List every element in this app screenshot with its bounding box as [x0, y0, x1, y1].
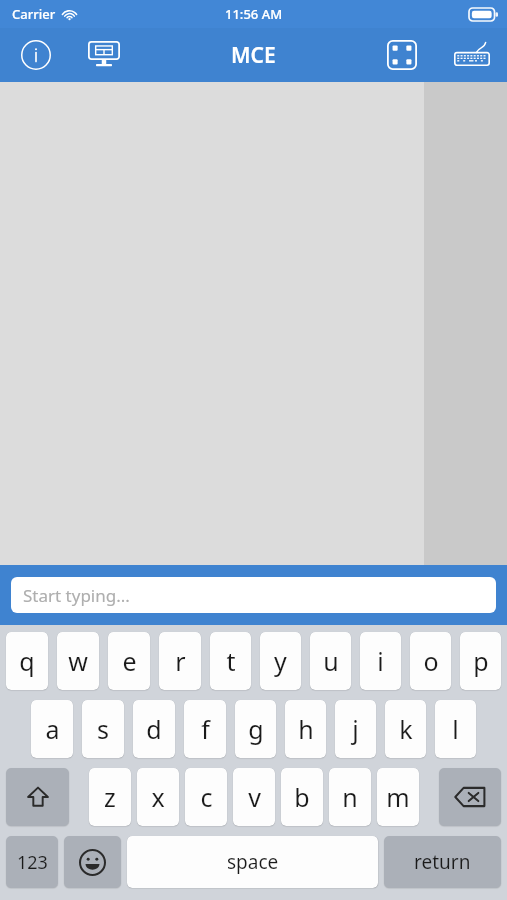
button[interactable]: x [137, 768, 179, 826]
button[interactable]: l [435, 700, 476, 758]
button[interactable]: 123 [6, 836, 58, 888]
button[interactable]: Keyboard [451, 34, 493, 76]
staticText: MCE [231, 41, 276, 70]
button[interactable]: Shift [6, 768, 69, 826]
staticText: a [45, 712, 60, 746]
staticText: k [399, 712, 413, 746]
staticText: x [151, 780, 165, 814]
button[interactable]: e [108, 632, 150, 690]
staticText: i [377, 644, 384, 678]
button[interactable]: f [184, 700, 226, 758]
button[interactable]: Emoji [64, 836, 121, 888]
button[interactable]: g [235, 700, 276, 758]
button[interactable]: h [285, 700, 326, 758]
button[interactable]: y [260, 632, 301, 690]
staticText: 11:56 AM [225, 5, 283, 23]
staticText: p [473, 644, 489, 678]
staticText: 123 [17, 850, 48, 875]
staticText: s [97, 712, 109, 746]
staticText: g [248, 712, 264, 746]
button[interactable]: z [89, 768, 131, 826]
button[interactable]: space [127, 836, 378, 888]
button[interactable]: v [233, 768, 275, 826]
staticText: v [248, 780, 261, 814]
button[interactable]: p [460, 632, 501, 690]
staticText: w [68, 644, 88, 678]
staticText: Start typing... [23, 584, 130, 607]
staticText: y [274, 644, 287, 678]
button[interactable]: k [385, 700, 426, 758]
button[interactable]: d [133, 700, 175, 758]
staticText: z [104, 780, 116, 814]
button[interactable]: b [281, 768, 323, 826]
button[interactable]: n [329, 768, 371, 826]
button[interactable]: Display [84, 35, 124, 75]
staticText: h [298, 712, 314, 746]
button[interactable]: c [185, 768, 227, 826]
staticText: b [294, 780, 310, 814]
staticText: f [201, 712, 210, 746]
button[interactable]: q [6, 632, 48, 690]
staticText: t [226, 644, 236, 678]
button[interactable]: i [360, 632, 401, 690]
button[interactable]: Start typing... [11, 577, 496, 613]
button[interactable]: j [335, 700, 376, 758]
button[interactable]: a [31, 700, 73, 758]
button[interactable]: o [410, 632, 451, 690]
staticText: m [386, 780, 410, 814]
staticText: n [342, 780, 358, 814]
button[interactable]: t [210, 632, 251, 690]
button[interactable]: u [310, 632, 351, 690]
staticText: e [122, 644, 137, 678]
button[interactable]: w [57, 632, 99, 690]
staticText: o [423, 644, 439, 678]
staticText: q [19, 644, 35, 678]
staticText: r [175, 644, 186, 678]
button[interactable]: Backspace [439, 768, 501, 826]
staticText: return [414, 849, 471, 875]
button[interactable]: r [159, 632, 201, 690]
staticText: d [146, 712, 162, 746]
button[interactable]: return [384, 836, 501, 888]
button[interactable]: Grid [383, 36, 421, 74]
button[interactable]: s [82, 700, 124, 758]
button[interactable]: Info [18, 37, 54, 73]
staticText: l [452, 712, 459, 746]
staticText: c [200, 780, 213, 814]
staticText: space [227, 849, 279, 875]
staticText: u [323, 644, 339, 678]
staticText: j [352, 712, 359, 746]
staticText: Carrier [12, 5, 56, 23]
button[interactable]: m [377, 768, 419, 826]
